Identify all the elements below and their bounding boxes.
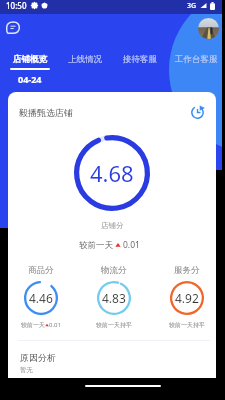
staticText: 4.83: [102, 290, 126, 306]
staticText: 工作台客服: [175, 54, 218, 65]
staticText: 10:50: [6, 0, 27, 11]
button[interactable]: 物流分: [77, 265, 150, 329]
staticText: 3G: [187, 1, 197, 11]
staticText: 0.01: [123, 239, 140, 251]
staticText: 店铺分: [101, 221, 124, 230]
staticText: 04-24: [18, 73, 42, 85]
staticText: 接待客服: [123, 54, 157, 65]
button[interactable]: 工作台客服: [168, 46, 224, 86]
staticText: 商品分: [28, 265, 54, 276]
staticText: 较前一天: [79, 240, 113, 251]
button[interactable]: 上线情况: [57, 46, 112, 86]
staticText: 上线情况: [68, 54, 102, 65]
staticText: 4.46: [29, 290, 53, 306]
staticText: 较前一天持平: [96, 321, 132, 329]
staticText: 暂无: [20, 366, 33, 374]
staticText: 物流分: [101, 265, 127, 276]
button[interactable]: Messages: [6, 21, 20, 34]
button[interactable]: History: [190, 105, 205, 120]
button[interactable]: Profile: [198, 18, 219, 39]
staticText: 店铺概览: [13, 54, 47, 65]
button[interactable]: 店铺概览: [2, 46, 57, 86]
staticText: 4.68: [90, 158, 134, 188]
staticText: 0.01: [49, 321, 61, 329]
staticText: 较前一天持平: [169, 321, 205, 329]
staticText: 较前一天: [21, 321, 45, 329]
staticText: 4.92: [175, 290, 199, 306]
button[interactable]: 接待客服: [112, 46, 168, 86]
staticText: 原因分析: [20, 352, 56, 363]
staticText: 毅播甄选店铺: [19, 107, 73, 118]
button[interactable]: 商品分: [8, 265, 77, 329]
button[interactable]: 服务分: [150, 265, 216, 329]
staticText: 服务分: [174, 265, 200, 276]
